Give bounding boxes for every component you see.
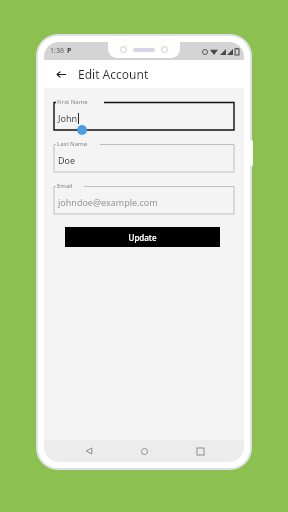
button[interactable]: Back bbox=[78, 440, 100, 462]
staticText: Email bbox=[57, 182, 73, 190]
staticText: Last Name bbox=[57, 140, 88, 148]
staticText: Edit Account bbox=[78, 66, 149, 82]
button[interactable]: Back bbox=[50, 63, 72, 85]
button[interactable]: Home bbox=[133, 440, 155, 462]
staticText: 1:36 bbox=[50, 46, 64, 56]
button[interactable]: First Name bbox=[52, 98, 236, 131]
button[interactable]: Update bbox=[65, 227, 220, 247]
staticText: First Name bbox=[57, 98, 88, 106]
staticText: John bbox=[58, 112, 78, 124]
staticText: Update bbox=[128, 232, 157, 243]
staticText: P bbox=[67, 46, 72, 56]
button[interactable]: Email bbox=[52, 182, 236, 215]
button[interactable]: Recents bbox=[189, 440, 211, 462]
staticText: johndoe@example.com bbox=[58, 196, 158, 208]
staticText: Doe bbox=[58, 154, 76, 166]
button[interactable]: Last Name bbox=[52, 140, 236, 173]
